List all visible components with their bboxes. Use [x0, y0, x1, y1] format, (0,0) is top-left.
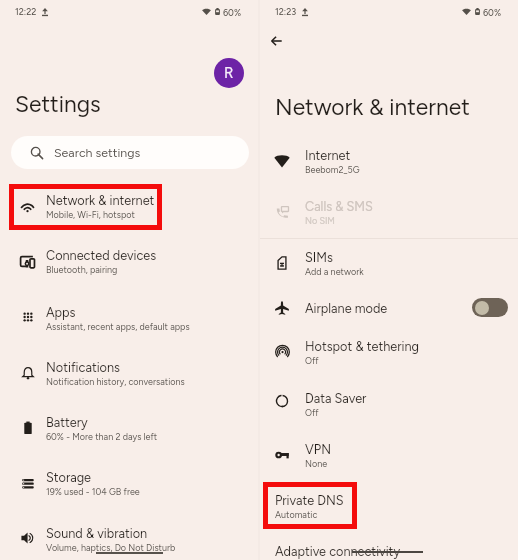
staticText: Bluetooth, pairing — [46, 264, 118, 275]
button[interactable]: Airplane mode — [260, 291, 518, 331]
staticText: Add a network — [305, 266, 364, 277]
button[interactable]: Private DNS — [260, 483, 518, 523]
staticText: No SIM — [305, 215, 335, 226]
staticText: 12:23 — [275, 6, 297, 17]
staticText: Apps — [46, 305, 76, 320]
button[interactable]: Sound & vibration — [0, 516, 258, 556]
staticText: 60% — [483, 7, 502, 18]
staticText: SIMs — [305, 250, 333, 265]
button[interactable]: Airplane mode switch — [472, 298, 508, 317]
staticText: Network & internet — [275, 93, 470, 120]
staticText: VPN — [305, 442, 331, 457]
staticText: Beebom2_5G — [305, 164, 360, 175]
button[interactable]: Hotspot & tethering — [260, 329, 518, 369]
button[interactable]: Storage — [0, 460, 258, 500]
staticText: Calls & SMS — [305, 199, 373, 214]
button[interactable]: Calls & SMS — [260, 189, 518, 229]
button[interactable]: Connected devices — [0, 238, 258, 278]
staticText: Settings — [15, 90, 101, 117]
staticText: Storage — [46, 470, 92, 485]
staticText: Notification history, conversations — [46, 376, 185, 387]
staticText: Automatic — [275, 509, 318, 520]
button[interactable]: Notifications — [0, 350, 258, 390]
staticText: Data Saver — [305, 391, 367, 406]
staticText: Battery — [46, 415, 88, 430]
staticText: None — [305, 458, 328, 469]
staticText: Notifications — [46, 360, 120, 375]
staticText: Off — [305, 355, 319, 366]
button[interactable]: VPN — [260, 432, 518, 472]
staticText: Connected devices — [46, 248, 157, 263]
button[interactable]: Search settings — [11, 136, 249, 169]
button[interactable]: Apps — [0, 295, 258, 335]
staticText: R — [224, 64, 234, 82]
button[interactable]: Account avatar — [214, 58, 244, 88]
button[interactable]: Battery — [0, 405, 258, 445]
staticText: Adaptive connectivity — [275, 544, 401, 559]
staticText: Hotspot & tethering — [305, 339, 419, 354]
staticText: 60% - More than 2 days left — [46, 431, 158, 442]
staticText: Search settings — [54, 145, 141, 160]
staticText: Sound & vibration — [46, 526, 148, 541]
button[interactable]: Back — [260, 25, 292, 57]
staticText: Private DNS — [275, 493, 344, 508]
staticText: Assistant, recent apps, default apps — [46, 321, 190, 332]
staticText: Off — [305, 407, 319, 418]
staticText: Mobile, Wi-Fi, hotspot — [46, 209, 135, 220]
staticText: Airplane mode — [305, 301, 388, 316]
staticText: 12:22 — [15, 6, 37, 17]
button[interactable]: Data Saver — [260, 381, 518, 421]
button[interactable]: SIMs — [260, 240, 518, 280]
staticText: 60% — [223, 7, 242, 18]
staticText: 19% used - 104 GB free — [46, 486, 140, 497]
staticText: Internet — [305, 148, 351, 163]
button[interactable]: Internet — [260, 138, 518, 178]
staticText: Network & internet — [46, 193, 155, 208]
button[interactable]: Network & internet — [0, 183, 258, 223]
staticText: Volume, haptics, Do Not Disturb — [46, 542, 176, 553]
